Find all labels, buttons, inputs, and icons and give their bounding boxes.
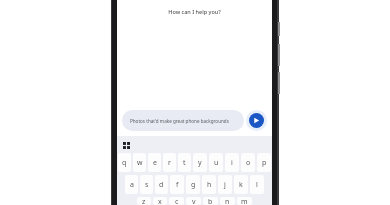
staticText: k — [239, 180, 243, 190]
button[interactable]: c — [169, 197, 184, 205]
button[interactable]: h — [202, 175, 216, 194]
staticText: m — [241, 197, 248, 205]
button[interactable]: z — [137, 197, 151, 205]
staticText: b — [208, 197, 213, 205]
staticText: e — [153, 158, 157, 168]
button[interactable]: p — [257, 153, 271, 172]
staticText: y — [198, 158, 202, 168]
button[interactable]: d — [155, 175, 168, 194]
staticText: r — [168, 158, 171, 168]
button[interactable]: j — [218, 175, 232, 194]
staticText: How can I help you? — [117, 8, 272, 15]
staticText: Photos that'd make great phone backgroun… — [130, 118, 229, 124]
button[interactable]: m — [237, 197, 252, 205]
staticText: c — [175, 197, 179, 205]
button[interactable]: e — [148, 153, 161, 172]
button[interactable]: r — [163, 153, 176, 172]
staticText: i — [231, 158, 233, 168]
button[interactable]: s — [140, 175, 153, 194]
staticText: f — [176, 180, 179, 190]
button[interactable]: n — [220, 197, 235, 205]
staticText: h — [207, 180, 212, 190]
button[interactable]: w — [133, 153, 146, 172]
staticText: v — [192, 197, 196, 205]
button[interactable]: b — [203, 197, 218, 205]
button[interactable]: a — [125, 175, 138, 194]
staticText: n — [225, 197, 230, 205]
button[interactable]: i — [225, 153, 239, 172]
staticText: z — [142, 197, 146, 205]
staticText: x — [158, 197, 162, 205]
staticText: t — [183, 158, 186, 168]
staticText: u — [214, 158, 219, 168]
button[interactable]: k — [234, 175, 248, 194]
button[interactable]: t — [178, 153, 191, 172]
staticText: l — [256, 180, 258, 190]
button[interactable]: Send — [246, 110, 267, 131]
button[interactable]: y — [193, 153, 207, 172]
staticText: p — [262, 158, 267, 168]
staticText: o — [246, 158, 251, 168]
button[interactable]: v — [186, 197, 201, 205]
staticText: j — [224, 180, 226, 190]
button[interactable]: u — [209, 153, 223, 172]
button[interactable]: l — [250, 175, 264, 194]
staticText: s — [145, 180, 149, 190]
button[interactable]: o — [241, 153, 255, 172]
staticText: d — [159, 180, 164, 190]
staticText: w — [137, 158, 143, 168]
staticText: g — [191, 180, 196, 190]
staticText: q — [122, 158, 127, 168]
button[interactable]: g — [186, 175, 200, 194]
button[interactable]: f — [170, 175, 184, 194]
staticText: a — [130, 180, 134, 190]
button[interactable]: q — [118, 153, 131, 172]
button[interactable]: Photos that'd make great phone backgroun… — [122, 110, 244, 131]
button[interactable]: x — [153, 197, 167, 205]
button[interactable]: Apps — [121, 140, 132, 151]
